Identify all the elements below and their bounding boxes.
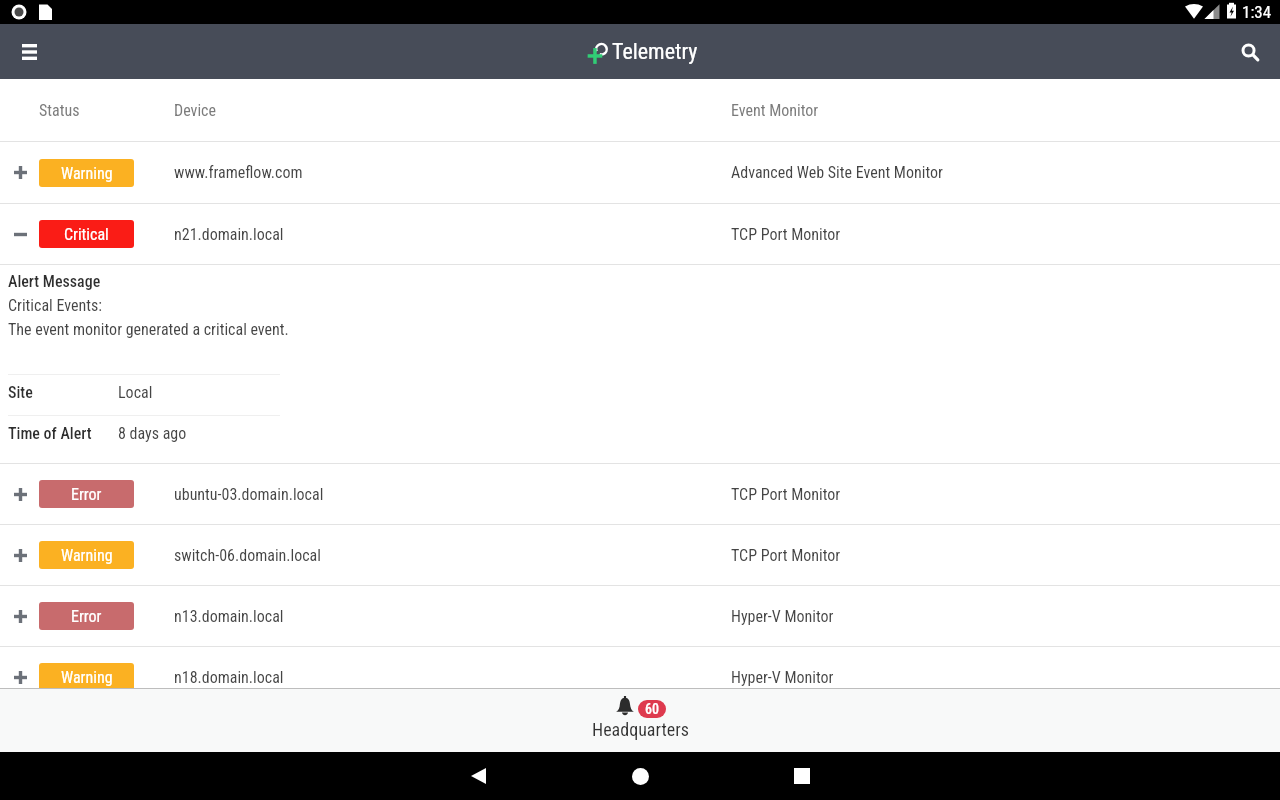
button[interactable]: Recent apps bbox=[782, 756, 822, 796]
staticText: TCP Port Monitor bbox=[731, 546, 841, 565]
staticText: ubuntu-03.domain.local bbox=[174, 485, 324, 504]
staticText: Critical Events: bbox=[8, 296, 102, 315]
other: Expand row bbox=[14, 166, 27, 179]
staticText: 60 bbox=[645, 701, 659, 717]
button[interactable]: Expand row bbox=[0, 647, 1280, 688]
staticText: Warning bbox=[61, 546, 113, 565]
staticText: switch-06.domain.local bbox=[174, 546, 321, 565]
staticText: Warning bbox=[61, 668, 113, 687]
button[interactable]: 60 bbox=[0, 689, 1280, 752]
staticText: TCP Port Monitor bbox=[731, 225, 841, 244]
staticText: 8 days ago bbox=[118, 424, 187, 443]
staticText: Time of Alert bbox=[8, 424, 92, 443]
staticText: n21.domain.local bbox=[174, 225, 284, 244]
button[interactable]: Back bbox=[458, 756, 498, 796]
staticText: Advanced Web Site Event Monitor bbox=[731, 163, 943, 182]
staticText: Site bbox=[8, 383, 33, 402]
staticText: Hyper-V Monitor bbox=[731, 668, 834, 687]
staticText: n18.domain.local bbox=[174, 668, 284, 687]
button[interactable]: Open navigation menu bbox=[9, 32, 49, 72]
staticText: Device bbox=[174, 101, 216, 120]
staticText: Alert Message bbox=[8, 272, 101, 291]
staticText: Telemetry bbox=[612, 39, 698, 65]
staticText: Error bbox=[71, 485, 102, 504]
staticText: 1:34 bbox=[1242, 2, 1272, 22]
staticText: Critical bbox=[64, 225, 109, 244]
other: Expand row bbox=[14, 549, 27, 562]
button[interactable]: Home bbox=[620, 756, 660, 796]
staticText: Headquarters bbox=[592, 719, 689, 740]
staticText: The event monitor generated a critical e… bbox=[8, 320, 289, 339]
other: Expand row bbox=[14, 488, 27, 501]
button[interactable]: Expand row bbox=[0, 464, 1280, 524]
button[interactable]: Expand row bbox=[0, 525, 1280, 585]
button[interactable]: Search bbox=[1232, 34, 1268, 70]
staticText: www.frameflow.com bbox=[174, 163, 303, 182]
staticText: Warning bbox=[61, 164, 113, 183]
staticText: Event Monitor bbox=[731, 101, 819, 120]
other: Expand row bbox=[14, 610, 27, 623]
button[interactable]: Expand row bbox=[0, 586, 1280, 646]
staticText: TCP Port Monitor bbox=[731, 485, 841, 504]
other: Expand row bbox=[14, 671, 27, 684]
button[interactable]: Expand row bbox=[0, 142, 1280, 203]
staticText: Status bbox=[39, 101, 80, 120]
staticText: Hyper-V Monitor bbox=[731, 607, 834, 626]
other: Collapse row bbox=[14, 228, 27, 241]
button[interactable]: Collapse row bbox=[0, 204, 1280, 264]
staticText: Error bbox=[71, 607, 102, 626]
staticText: n13.domain.local bbox=[174, 607, 284, 626]
staticText: Local bbox=[118, 383, 153, 402]
